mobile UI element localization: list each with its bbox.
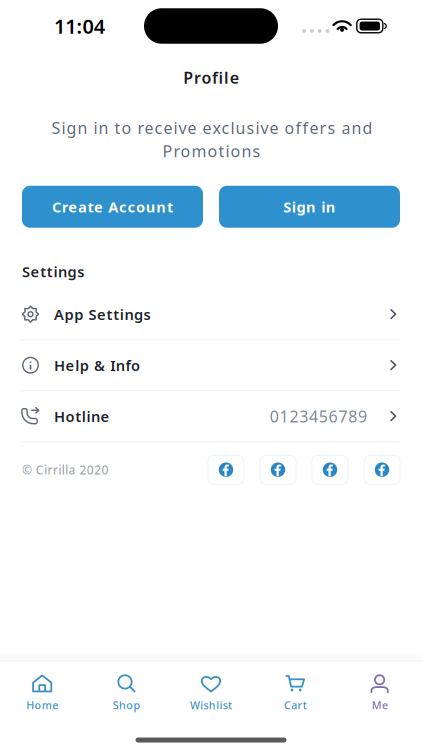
staticText: Profile: [183, 67, 239, 88]
staticText: Shop: [113, 698, 141, 712]
staticText: © Cirrilla 2020: [22, 462, 109, 478]
button[interactable]: Cart: [253, 665, 338, 721]
staticText: Settings: [22, 262, 84, 281]
button[interactable]: Facebook: [208, 455, 244, 484]
staticText: 0123456789: [270, 406, 367, 427]
staticText: Help & Info: [54, 355, 140, 375]
staticText: Sign in to receive exclusive offers and …: [50, 117, 371, 162]
button[interactable]: Home: [0, 665, 84, 721]
button[interactable]: Wishlist: [169, 665, 253, 721]
button[interactable]: Hotline: [0, 391, 422, 442]
button[interactable]: App Settings: [0, 289, 422, 340]
button[interactable]: Facebook: [364, 455, 400, 484]
button[interactable]: Sign in: [219, 186, 400, 228]
staticText: Hotline: [54, 406, 110, 426]
staticText: Me: [372, 698, 388, 712]
staticText: App Settings: [54, 304, 151, 324]
button[interactable]: Facebook: [260, 455, 296, 484]
staticText: Wishlist: [190, 698, 232, 712]
staticText: Cart: [284, 698, 307, 712]
staticText: 11:04: [54, 13, 105, 39]
button[interactable]: Create Account: [22, 186, 203, 228]
button[interactable]: Facebook: [312, 455, 348, 484]
button[interactable]: Shop: [84, 665, 169, 721]
staticText: Create Account: [52, 197, 173, 216]
button[interactable]: Help & Info: [0, 340, 422, 391]
button[interactable]: Me: [338, 665, 422, 721]
staticText: Sign in: [283, 197, 336, 216]
staticText: Home: [26, 698, 58, 712]
